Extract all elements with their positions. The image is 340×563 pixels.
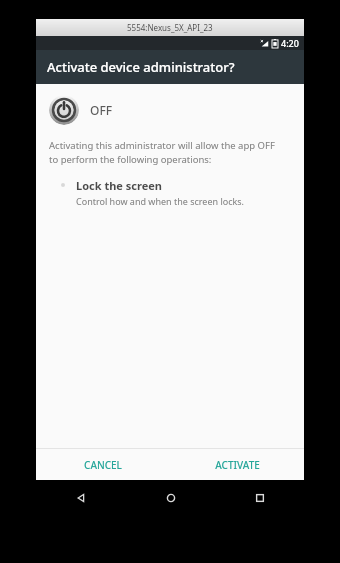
button[interactable]: Back [36,481,126,515]
staticText: CANCEL [84,458,122,472]
staticText: Control how and when the screen locks. [76,195,244,207]
staticText: OFF [90,102,113,118]
button[interactable]: ACTIVATE [170,449,304,480]
staticText: 4:20 [281,37,299,49]
staticText: 5554:Nexus_5X_API_23 [127,22,213,33]
staticText: Activate device administrator? [47,58,235,76]
button[interactable]: CANCEL [36,449,170,480]
staticText: ACTIVATE [215,458,260,472]
staticText: Activating this administrator will allow… [49,139,286,166]
button[interactable]: Home [126,481,215,515]
staticText: Lock the screen [76,178,162,193]
button[interactable]: Recents [215,481,304,515]
